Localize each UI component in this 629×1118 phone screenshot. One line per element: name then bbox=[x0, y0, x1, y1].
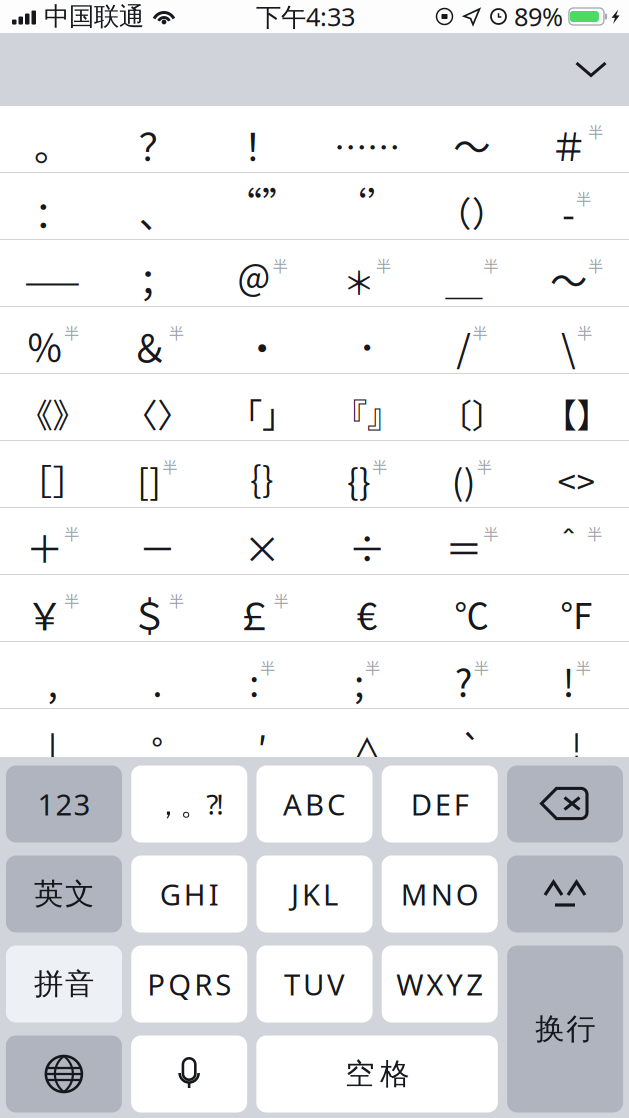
staticText: ￡ bbox=[236, 587, 273, 641]
button[interactable]: ＊ bbox=[314, 240, 419, 306]
button[interactable]: ！ bbox=[210, 106, 314, 172]
button[interactable]: ∧ bbox=[314, 709, 419, 775]
button[interactable]: MNO bbox=[382, 855, 498, 932]
staticText: TUV bbox=[284, 964, 345, 1003]
button[interactable]: ＿ bbox=[419, 240, 524, 306]
button[interactable]: …… bbox=[314, 106, 419, 172]
button[interactable]: ￥ bbox=[0, 575, 105, 641]
staticText: - bbox=[562, 185, 575, 239]
button[interactable]: ＆ bbox=[105, 307, 210, 373]
button[interactable]: 〔〕 bbox=[419, 374, 524, 440]
staticText: ； bbox=[139, 252, 176, 306]
button[interactable]: ° bbox=[105, 709, 210, 775]
button[interactable]: ＠ bbox=[210, 240, 314, 306]
button[interactable]: 空格 bbox=[256, 1035, 498, 1112]
button[interactable]: <> bbox=[524, 441, 629, 507]
button[interactable]: ＝ bbox=[419, 508, 524, 574]
staticText: 、 bbox=[139, 185, 176, 239]
button[interactable]: \ bbox=[524, 307, 629, 373]
button[interactable]: ～ bbox=[419, 106, 524, 172]
button[interactable]: 「」 bbox=[210, 374, 314, 440]
button[interactable]: • bbox=[314, 307, 419, 373]
button[interactable]: － bbox=[105, 508, 210, 574]
staticText: 半 bbox=[169, 589, 184, 611]
staticText: 中国联通 bbox=[44, 1, 144, 32]
button[interactable]: Hide symbols bbox=[566, 44, 616, 94]
staticText: ？ bbox=[139, 118, 176, 172]
button[interactable]: Dictation bbox=[131, 1035, 247, 1112]
staticText: ; bbox=[354, 654, 364, 708]
button[interactable]: 换行 bbox=[507, 945, 623, 1112]
button[interactable]: ？ bbox=[105, 106, 210, 172]
button[interactable]: Emoticons bbox=[507, 855, 623, 932]
button[interactable]: WXYZ bbox=[382, 945, 498, 1022]
button[interactable]: : bbox=[210, 642, 314, 708]
button[interactable]: ; bbox=[314, 642, 419, 708]
button[interactable]: 【】 bbox=[524, 374, 629, 440]
button[interactable]: TUV bbox=[256, 945, 372, 1022]
button[interactable]: DEF bbox=[382, 765, 498, 842]
button[interactable]: {} bbox=[314, 441, 419, 507]
staticText: JKL bbox=[291, 874, 338, 913]
button[interactable]: ｛｝ bbox=[210, 441, 314, 507]
button[interactable]: ＋ bbox=[0, 508, 105, 574]
button[interactable]: 英文 bbox=[6, 855, 122, 932]
button[interactable]: € bbox=[314, 575, 419, 641]
button[interactable]: ABC bbox=[256, 765, 372, 842]
staticText: ＆ bbox=[131, 319, 168, 373]
button[interactable]: ¦ bbox=[524, 709, 629, 775]
button[interactable]: × bbox=[210, 508, 314, 574]
button[interactable]: 。 bbox=[0, 106, 105, 172]
button[interactable]: ： bbox=[0, 173, 105, 239]
button[interactable]: ＄ bbox=[105, 575, 210, 641]
button[interactable]: / bbox=[419, 307, 524, 373]
staticText: [] bbox=[137, 455, 161, 505]
staticText: “” bbox=[226, 177, 298, 229]
button[interactable]: ′ bbox=[210, 709, 314, 775]
button[interactable]: ￡ bbox=[210, 575, 314, 641]
staticText: 「」 bbox=[229, 389, 295, 437]
button[interactable]: PQRS bbox=[131, 945, 247, 1022]
button[interactable]: “” bbox=[210, 173, 314, 239]
button[interactable]: ＾ bbox=[524, 508, 629, 574]
button[interactable]: · bbox=[210, 307, 314, 373]
button[interactable]: Delete bbox=[507, 765, 623, 842]
button[interactable]: ，。?! bbox=[131, 765, 247, 842]
button[interactable]: （） bbox=[419, 173, 524, 239]
staticText: 半 bbox=[472, 321, 487, 343]
button[interactable]: 『』 bbox=[314, 374, 419, 440]
button[interactable]: 拼音 bbox=[6, 945, 122, 1022]
staticText: ＃ bbox=[550, 118, 587, 172]
button[interactable]: 123 bbox=[6, 765, 122, 842]
button[interactable]: ～ bbox=[524, 240, 629, 306]
staticText: 拼音 bbox=[34, 966, 94, 1002]
button[interactable]: ℉ bbox=[524, 575, 629, 641]
staticText: DEF bbox=[411, 784, 469, 823]
button[interactable]: ＃ bbox=[524, 106, 629, 172]
button[interactable]: . bbox=[105, 642, 210, 708]
button[interactable]: , bbox=[0, 642, 105, 708]
button[interactable]: ； bbox=[105, 240, 210, 306]
button[interactable]: 〈〉 bbox=[105, 374, 210, 440]
button[interactable]: ‘’ bbox=[314, 173, 419, 239]
button[interactable]: ` bbox=[419, 709, 524, 775]
button[interactable]: [] bbox=[105, 441, 210, 507]
button[interactable]: ％ bbox=[0, 307, 105, 373]
staticText: ° bbox=[151, 725, 163, 771]
button[interactable]: ［］ bbox=[0, 441, 105, 507]
button[interactable]: - bbox=[524, 173, 629, 239]
button[interactable]: | bbox=[0, 709, 105, 775]
button[interactable]: Switch keyboard bbox=[6, 1035, 122, 1112]
staticText: ＋ bbox=[26, 520, 63, 574]
button[interactable]: GHI bbox=[131, 855, 247, 932]
staticText: － bbox=[139, 520, 176, 574]
button[interactable]: ℃ bbox=[419, 575, 524, 641]
button[interactable]: 、 bbox=[105, 173, 210, 239]
button[interactable]: JKL bbox=[256, 855, 372, 932]
button[interactable]: 《》 bbox=[0, 374, 105, 440]
button[interactable]: ÷ bbox=[314, 508, 419, 574]
button[interactable]: ! bbox=[524, 642, 629, 708]
button[interactable]: () bbox=[419, 441, 524, 507]
button[interactable]: —— bbox=[0, 240, 105, 306]
button[interactable]: ? bbox=[419, 642, 524, 708]
